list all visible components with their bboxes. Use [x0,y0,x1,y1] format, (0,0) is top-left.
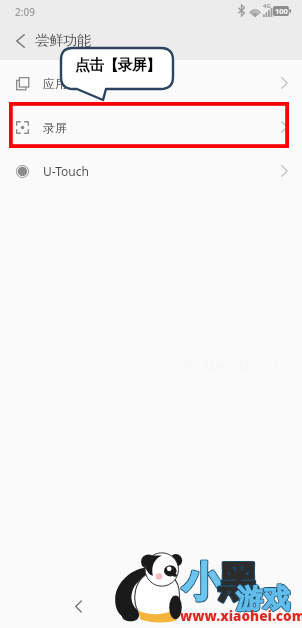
staticText: 尝鲜功能 [35,32,91,50]
staticText: 100 [275,6,288,16]
staticText: 黑 [218,557,258,607]
staticText: 应用 [43,76,67,91]
staticText: 2:09 [15,5,35,19]
button[interactable]: Back [5,22,35,60]
button[interactable]: 录屏 [0,105,302,149]
staticText: 小 [182,557,222,607]
staticText: 游戏 [236,582,290,616]
staticText: www.xiaohei.com [180,607,302,625]
staticText: 录屏 [43,120,67,135]
staticText: 小 [182,557,222,607]
staticText: U-Touch [43,163,89,179]
staticText: 黑 [218,557,258,607]
button[interactable]: Back [66,594,90,618]
button[interactable]: U-Touch [0,149,302,193]
staticText: 4G [263,2,271,10]
button[interactable]: 应用 [0,61,302,105]
staticText: 点击【录屏】 [75,56,161,75]
staticText: 游戏 [236,582,290,616]
